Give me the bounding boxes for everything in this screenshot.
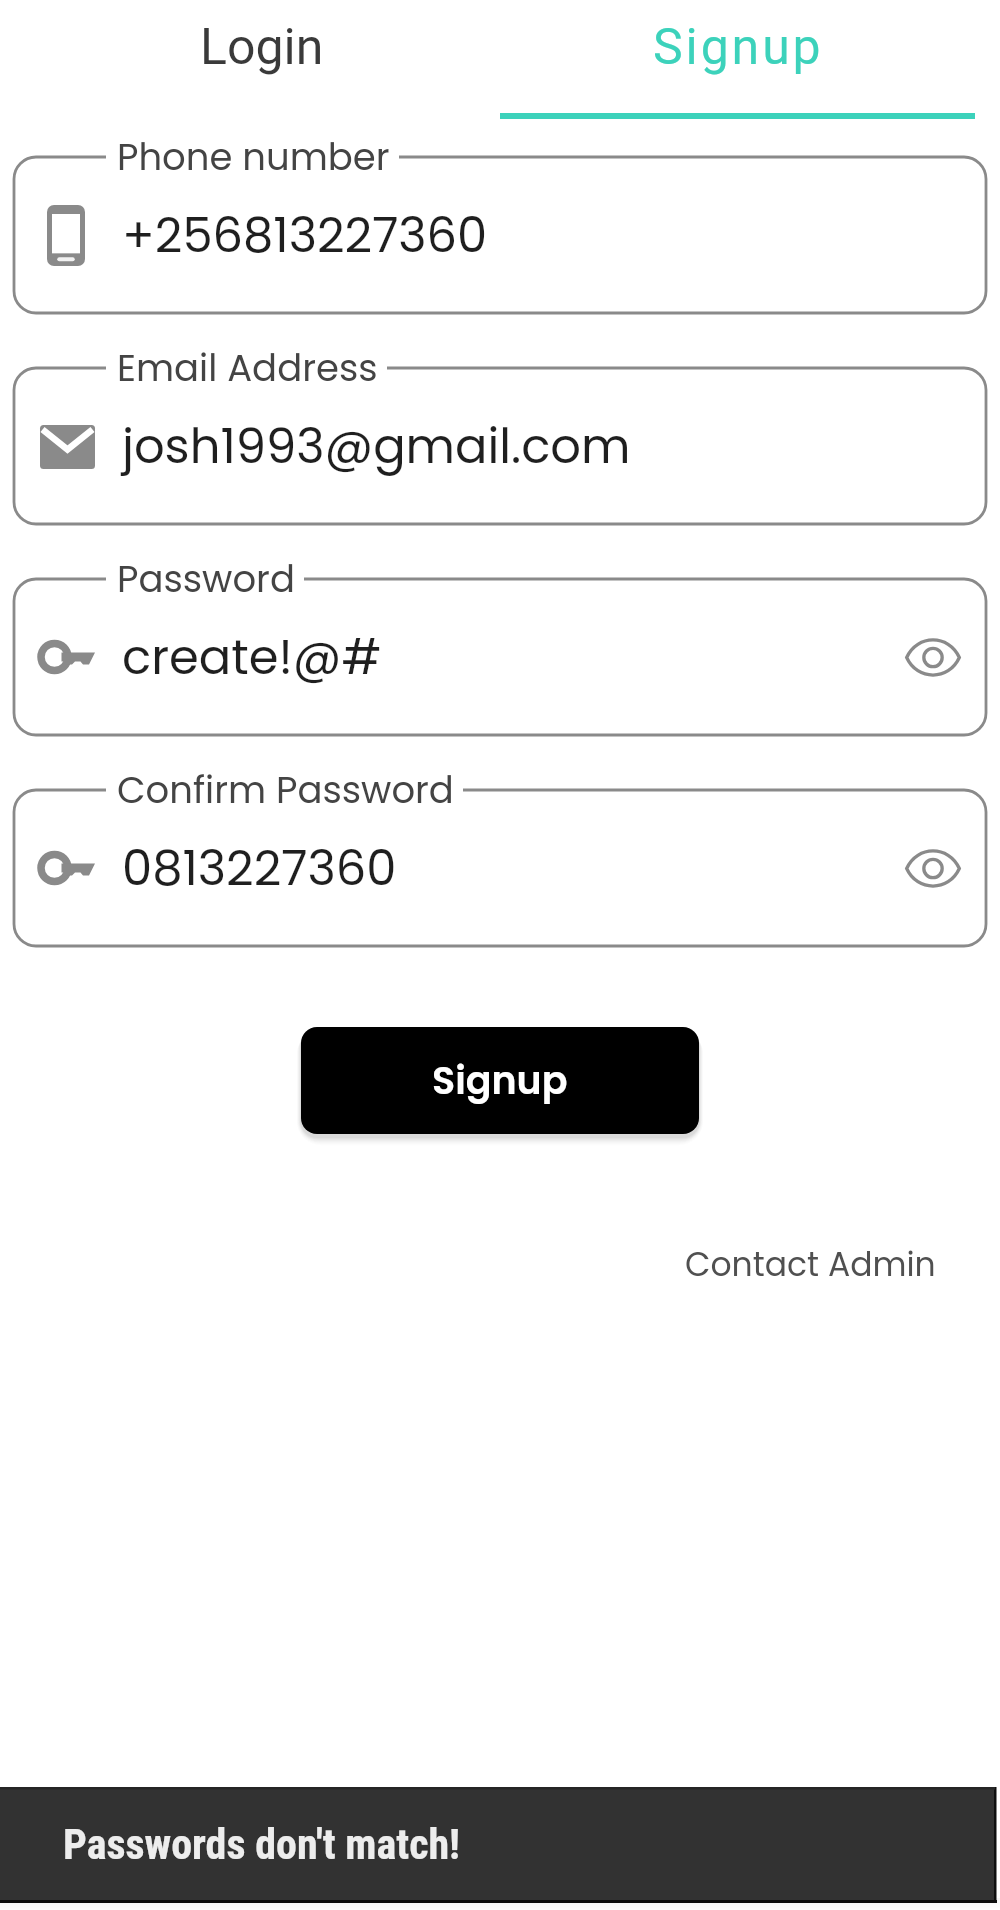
button[interactable]: Contact Admin <box>685 1241 936 1287</box>
staticText: Signup <box>653 18 824 77</box>
staticText: Login <box>200 18 324 77</box>
button[interactable]: Signup <box>500 0 1000 121</box>
button[interactable]: Signup <box>301 1027 699 1134</box>
staticText: create!@# <box>122 624 896 691</box>
button[interactable]: Toggle password visibility <box>896 620 970 694</box>
staticText: Passwords don't match! <box>63 1820 461 1869</box>
staticText: Contact Admin <box>685 1241 936 1287</box>
staticText: josh1993@gmail.com <box>122 413 970 480</box>
staticText: Signup <box>432 1054 568 1107</box>
button[interactable]: Login <box>0 0 500 121</box>
staticText: 0813227360 <box>122 835 896 902</box>
staticText: +256813227360 <box>122 202 970 269</box>
button[interactable]: Toggle password visibility <box>896 831 970 905</box>
